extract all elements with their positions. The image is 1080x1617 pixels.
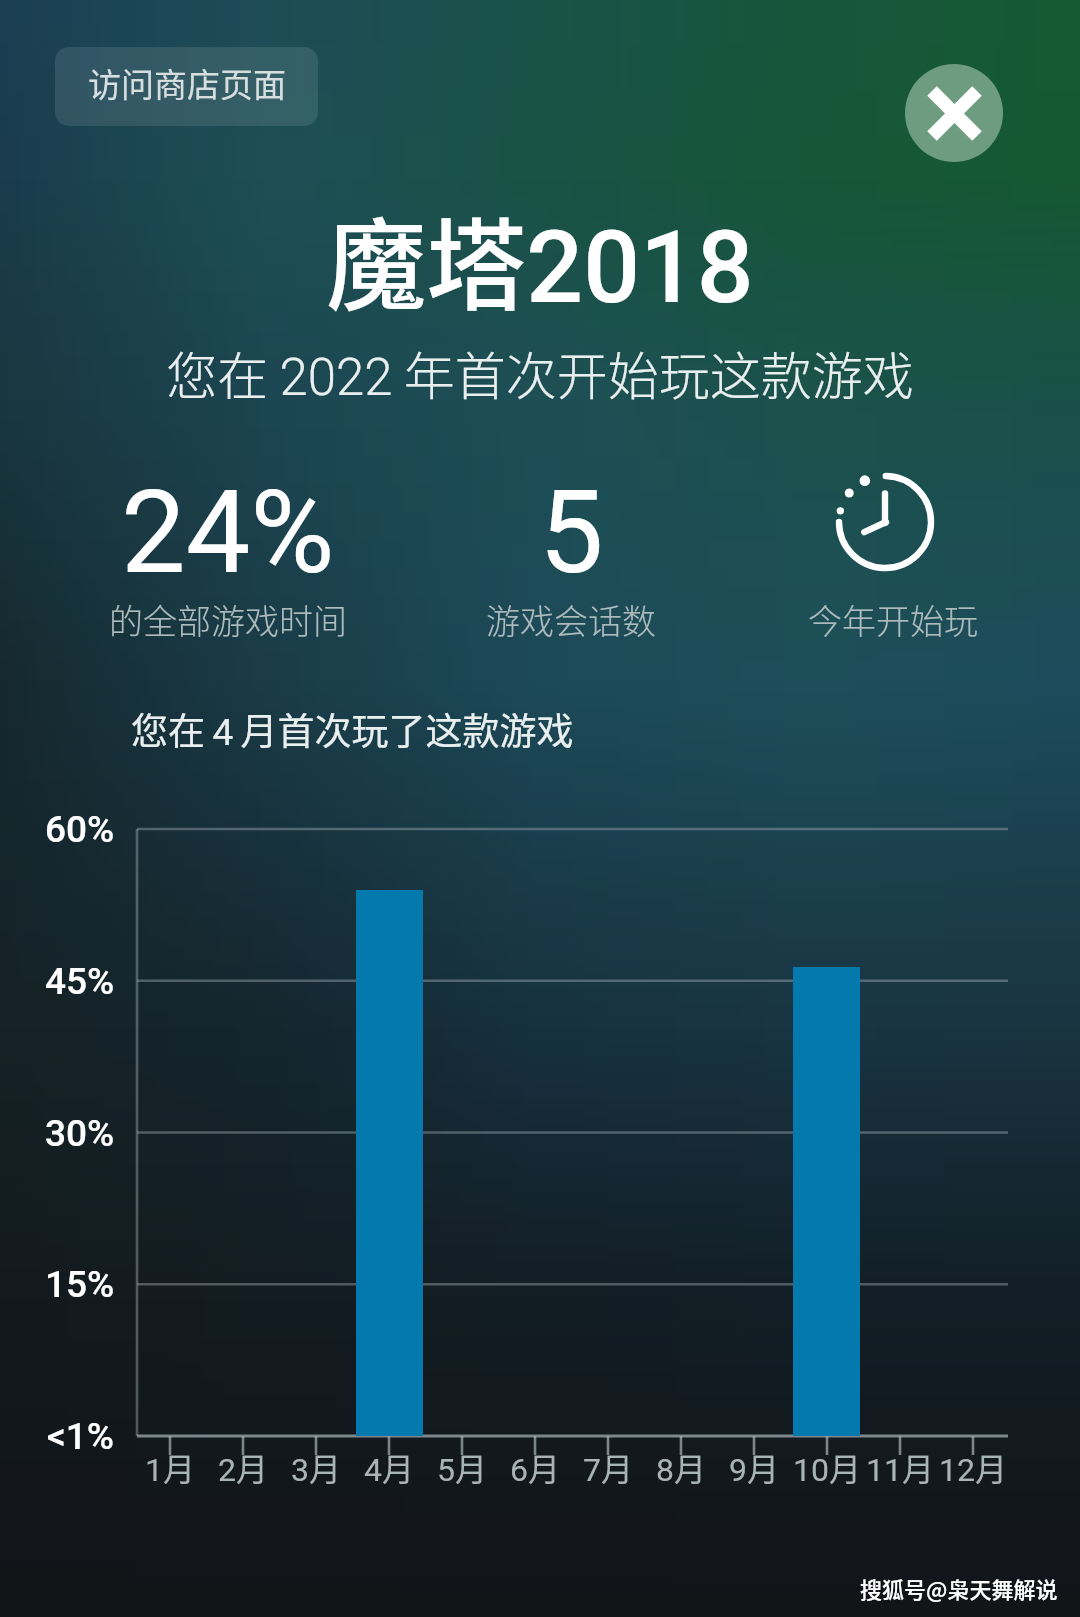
staticText: 30% [45, 1112, 115, 1155]
staticText: 1月 [145, 1444, 195, 1490]
staticText: 2月 [218, 1444, 268, 1490]
staticText: 今年开始玩 [808, 595, 978, 644]
staticText: 9月 [729, 1444, 779, 1490]
staticText: 5 [539, 465, 604, 600]
staticText: <1% [47, 1415, 115, 1458]
staticText: 12月 [939, 1444, 1007, 1490]
staticText: 访问商店页面 [88, 59, 286, 107]
staticText: 7月 [583, 1444, 633, 1490]
staticText: 魔塔2018 [326, 186, 754, 331]
staticText: 60% [45, 808, 115, 851]
staticText: 45% [45, 960, 115, 1003]
staticText: 8月 [656, 1444, 706, 1490]
staticText: 10月 [793, 1444, 861, 1490]
staticText: 3月 [291, 1444, 341, 1490]
staticText: 24% [121, 465, 335, 600]
staticText: 4月 [364, 1444, 414, 1490]
staticText: 的全部游戏时间 [109, 595, 347, 644]
staticText: 11月 [866, 1444, 934, 1490]
button[interactable]: 访问商店页面 [55, 47, 318, 126]
staticText: 搜狐号@枭天舞解说 [860, 1572, 1058, 1604]
staticText: 您在 2022 年首次开始玩这款游戏 [166, 336, 914, 410]
staticText: 5月 [437, 1444, 487, 1490]
staticText: 游戏会话数 [486, 595, 656, 644]
staticText: 15% [45, 1263, 115, 1306]
button[interactable]: Close [905, 64, 1003, 162]
staticText: 您在 4 月首次玩了这款游戏 [131, 702, 574, 756]
staticText: 6月 [510, 1444, 560, 1490]
